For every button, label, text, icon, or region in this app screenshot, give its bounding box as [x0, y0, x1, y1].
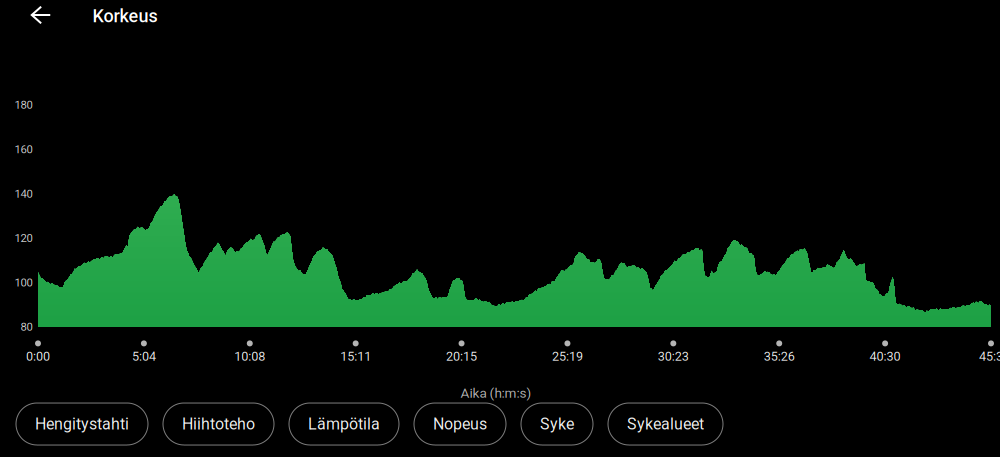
staticText: Korkeus: [92, 5, 157, 27]
staticText: Nopeus: [433, 415, 487, 433]
staticText: 5:04: [132, 349, 156, 364]
button[interactable]: Hiihtoteho: [163, 403, 274, 445]
staticText: Lämpötila: [308, 415, 380, 433]
button[interactable]: Syke: [521, 403, 593, 445]
staticText: 80: [21, 320, 33, 334]
staticText: 0:00: [26, 349, 50, 364]
staticText: 120: [15, 232, 33, 245]
staticText: 10:08: [234, 349, 265, 364]
staticText: 45:3: [979, 349, 1000, 364]
button[interactable]: Nopeus: [414, 403, 506, 445]
staticText: 180: [15, 98, 33, 112]
staticText: 100: [15, 276, 33, 289]
staticText: 40:30: [870, 349, 901, 364]
staticText: 160: [15, 143, 33, 156]
button[interactable]: Back: [17, 0, 65, 37]
staticText: 25:19: [552, 349, 583, 364]
staticText: Syke: [540, 415, 574, 433]
button[interactable]: Lämpötila: [289, 403, 399, 445]
staticText: 20:15: [446, 349, 477, 364]
staticText: 35:26: [764, 349, 795, 364]
staticText: Hiihtoteho: [182, 415, 255, 433]
staticText: Sykealueet: [627, 415, 704, 433]
button[interactable]: Sykealueet: [608, 403, 723, 445]
staticText: Hengitystahti: [35, 415, 129, 433]
staticText: Aika (h:m:s): [460, 385, 531, 401]
staticText: 15:11: [340, 349, 371, 364]
button[interactable]: Hengitystahti: [16, 403, 148, 445]
staticText: 30:23: [658, 349, 689, 364]
staticText: 140: [15, 187, 33, 200]
